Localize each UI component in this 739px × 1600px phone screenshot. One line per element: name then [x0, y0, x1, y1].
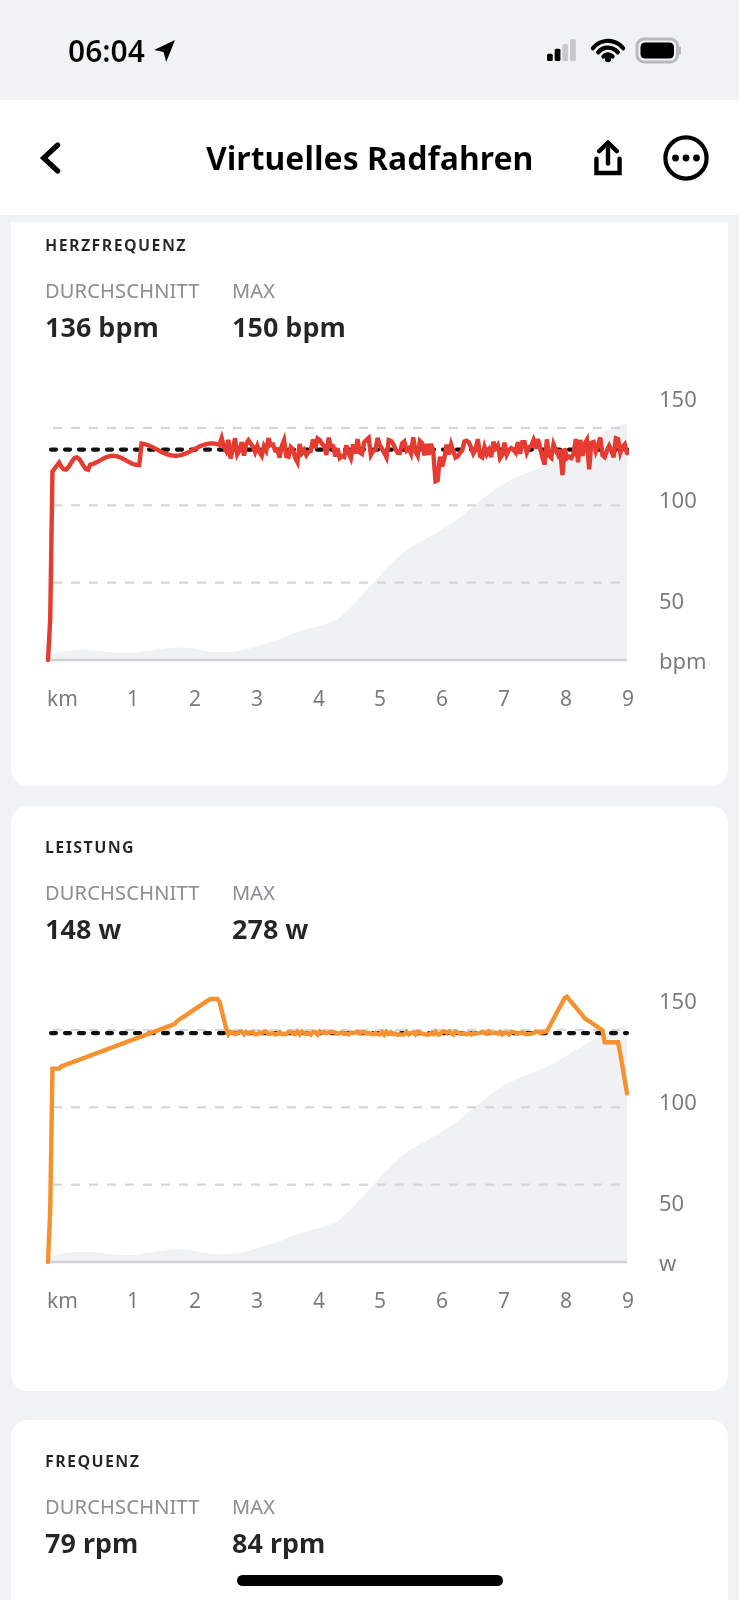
staticText: 5 [374, 1286, 387, 1315]
button[interactable]: Share [579, 129, 637, 187]
staticText: MAX [232, 1493, 276, 1520]
staticText: 6 [436, 684, 449, 713]
staticText: 2 [189, 684, 202, 713]
staticText: w [659, 1247, 677, 1277]
staticText: 84 rpm [232, 1524, 326, 1561]
button[interactable]: FREQUENZ [11, 1420, 728, 1600]
staticText: 50 [659, 1187, 685, 1217]
staticText: 7 [498, 1286, 511, 1315]
staticText: 1 [127, 1286, 140, 1315]
staticText: FREQUENZ [45, 1450, 141, 1472]
staticText: 150 [659, 985, 697, 1015]
staticText: MAX [232, 879, 276, 906]
staticText: 9 [622, 1286, 635, 1315]
button[interactable]: HERZFREQUENZ [11, 222, 728, 786]
staticText: 5 [374, 684, 387, 713]
staticText: HERZFREQUENZ [45, 234, 187, 256]
staticText: 8 [560, 684, 573, 713]
staticText: km [47, 684, 78, 713]
staticText: 3 [251, 684, 264, 713]
staticText: 9 [622, 684, 635, 713]
staticText: Virtuelles Radfahren [206, 136, 534, 180]
button[interactable]: More options [657, 129, 715, 187]
staticText: 150 bpm [232, 308, 346, 345]
staticText: DURCHSCHNITT [45, 1493, 200, 1520]
staticText: km [47, 1286, 78, 1315]
staticText: 4 [313, 1286, 326, 1315]
staticText: 06:04 [68, 30, 145, 71]
staticText: DURCHSCHNITT [45, 879, 200, 906]
staticText: 79 rpm [45, 1524, 139, 1561]
staticText: 100 [659, 484, 697, 514]
staticText: 150 [659, 383, 697, 413]
staticText: 50 [659, 585, 685, 615]
staticText: 6 [436, 1286, 449, 1315]
staticText: 7 [498, 684, 511, 713]
staticText: 1 [127, 684, 140, 713]
staticText: 2 [189, 1286, 202, 1315]
staticText: 136 bpm [45, 308, 159, 345]
staticText: 4 [313, 684, 326, 713]
staticText: 148 w [45, 910, 122, 947]
button[interactable]: LEISTUNG [11, 806, 728, 1391]
staticText: 278 w [232, 910, 309, 947]
staticText: DURCHSCHNITT [45, 277, 200, 304]
staticText: 100 [659, 1086, 697, 1116]
staticText: 8 [560, 1286, 573, 1315]
staticText: bpm [659, 645, 707, 675]
button[interactable]: Back [24, 130, 80, 186]
staticText: MAX [232, 277, 276, 304]
staticText: LEISTUNG [45, 836, 136, 858]
staticText: 3 [251, 1286, 264, 1315]
